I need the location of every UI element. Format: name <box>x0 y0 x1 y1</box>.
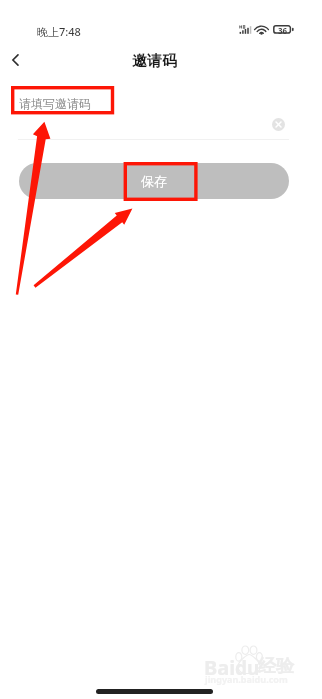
staticText: 请填写邀请码 <box>19 96 91 111</box>
button[interactable]: Clear text <box>272 118 285 131</box>
staticText: 邀请码 <box>132 52 177 71</box>
staticText: 晚上7:48 <box>37 24 81 39</box>
staticText: 36 <box>278 25 288 36</box>
staticText: du <box>235 655 260 681</box>
staticText: 保存 <box>141 173 167 189</box>
staticText: Bai <box>204 654 236 681</box>
button[interactable]: 保存 <box>19 163 289 199</box>
staticText: 经验 <box>258 655 294 678</box>
button[interactable]: Back <box>0 44 32 76</box>
staticText: jingyan.baidu.com <box>205 673 288 685</box>
